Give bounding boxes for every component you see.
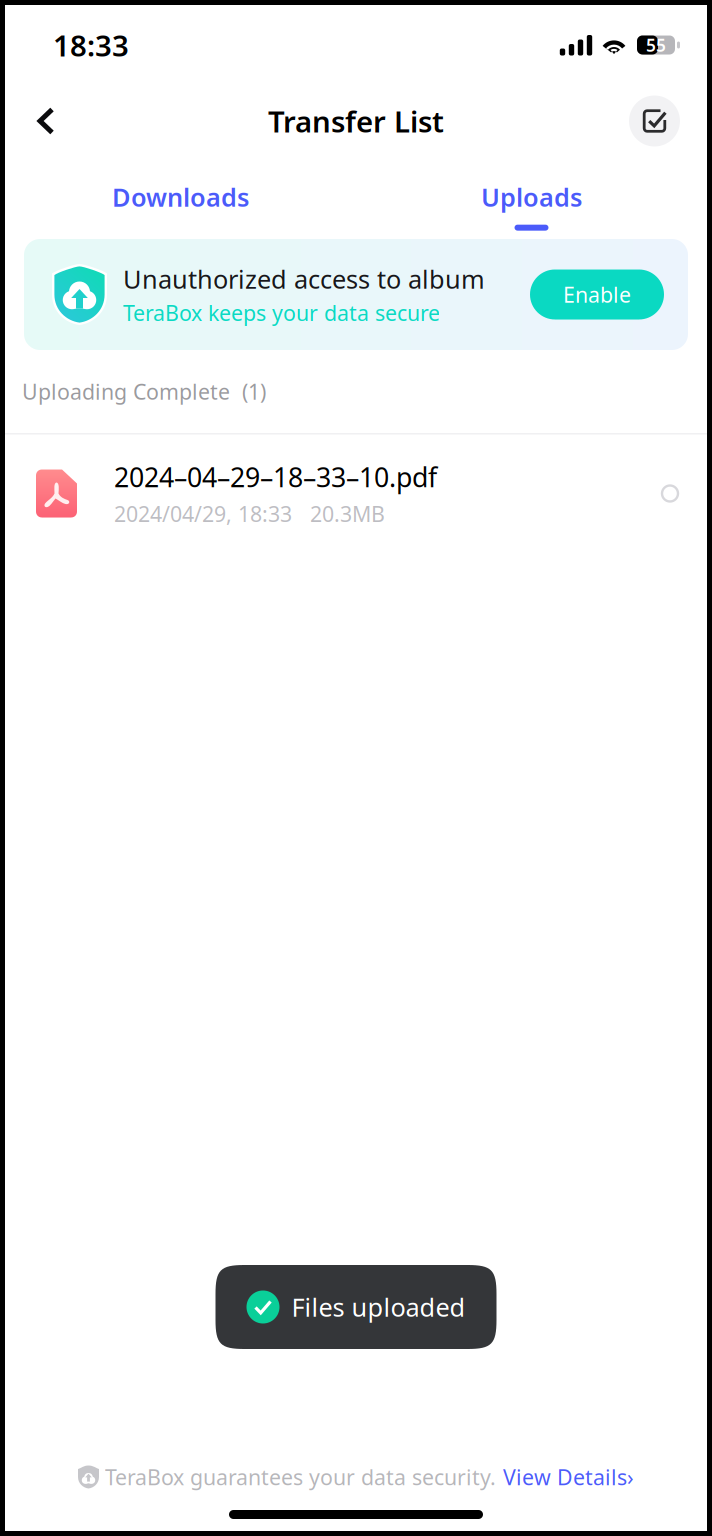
staticText: Enable [563,280,631,309]
staticText: Downloads [112,180,249,214]
staticText: Uploads [481,180,582,214]
staticText: Transfer List [268,101,444,140]
button[interactable]: 2024–04–29–18–33–10.pdf [5,434,707,552]
staticText: 2024–04–29–18–33–10.pdf [114,459,437,494]
button[interactable]: View Details› [503,1463,634,1491]
staticText: View Details› [503,1463,634,1491]
button[interactable]: Uploads [356,157,707,235]
staticText: TeraBox keeps your data secure [123,299,440,327]
staticText: 2024/04/29, 18:33 20.3MB [114,499,385,528]
staticText: TeraBox guarantees your data security. [105,1463,496,1491]
button[interactable]: Back [20,95,72,147]
button[interactable]: Select items [629,95,680,146]
button[interactable]: Downloads [5,157,356,235]
staticText: Files uploaded [291,1290,465,1324]
staticText: 18:33 [53,25,129,64]
button[interactable]: Enable [530,269,664,319]
staticText: Uploading Complete (1) [22,377,266,406]
staticText: Unauthorized access to album [123,262,485,296]
staticText: 55 [646,33,666,56]
